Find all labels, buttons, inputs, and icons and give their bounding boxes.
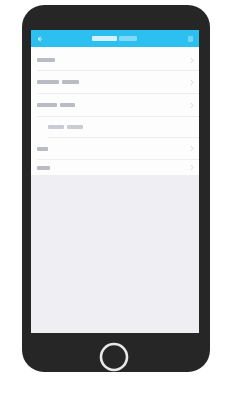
button[interactable] xyxy=(31,160,199,175)
button[interactable]: More options xyxy=(186,34,195,43)
button[interactable] xyxy=(31,94,199,117)
button[interactable]: Back xyxy=(35,34,44,43)
button[interactable]: Home xyxy=(99,342,129,372)
button[interactable] xyxy=(31,71,199,94)
button[interactable] xyxy=(31,50,199,71)
button[interactable] xyxy=(31,138,199,160)
button[interactable] xyxy=(31,117,199,138)
